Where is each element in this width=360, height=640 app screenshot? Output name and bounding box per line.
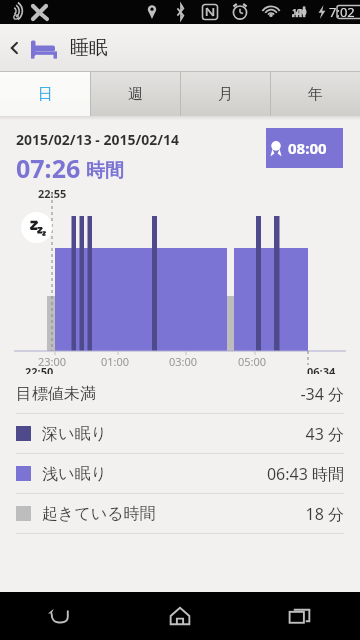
staticText: 月 xyxy=(218,85,233,104)
staticText: 起きている時間 xyxy=(42,504,156,524)
button[interactable]: 起きている時間 xyxy=(16,494,344,533)
staticText: 06:34 xyxy=(307,364,336,374)
staticText: 18 分 xyxy=(305,503,344,525)
button[interactable]: 月 xyxy=(180,72,270,116)
button[interactable]: Back xyxy=(0,592,120,640)
button[interactable]: 目標値未満 xyxy=(16,374,344,413)
staticText: 100 xyxy=(292,6,307,18)
button[interactable]: Back xyxy=(0,24,30,71)
staticText: 22:55 xyxy=(38,186,67,201)
staticText: 7:02 xyxy=(329,3,355,21)
button[interactable]: 年 xyxy=(270,72,360,116)
staticText: 2015/02/13 - 2015/02/14 xyxy=(16,130,180,149)
staticText: 睡眠 xyxy=(70,36,108,60)
button[interactable]: 週 xyxy=(90,72,180,116)
button[interactable]: 日 xyxy=(0,72,90,116)
staticText: 23:00 xyxy=(38,354,67,369)
staticText: 時間 xyxy=(86,159,124,183)
button[interactable]: Home xyxy=(120,592,240,640)
staticText: 週 xyxy=(128,85,143,104)
staticText: 06:43 時間 xyxy=(266,463,344,485)
staticText: 浅い眠り xyxy=(42,464,107,484)
staticText: 01:00 xyxy=(101,354,130,369)
button[interactable]: 深い眠り xyxy=(16,414,344,453)
staticText: 07:26 xyxy=(16,151,81,185)
staticText: 05:00 xyxy=(238,354,267,369)
staticText: 43 分 xyxy=(305,423,344,445)
staticText: 目標値未満 xyxy=(16,384,96,404)
staticText: 03:00 xyxy=(169,354,198,369)
button[interactable]: Recents xyxy=(240,592,360,640)
staticText: 日 xyxy=(38,85,53,104)
staticText: 年 xyxy=(308,85,323,104)
button[interactable]: 浅い眠り xyxy=(16,454,344,493)
button[interactable]: 08:00 xyxy=(266,128,343,168)
staticText: 22:50 xyxy=(25,364,54,374)
staticText: -34 分 xyxy=(300,383,344,405)
staticText: 深い眠り xyxy=(42,424,107,444)
staticText: 08:00 xyxy=(288,138,327,158)
